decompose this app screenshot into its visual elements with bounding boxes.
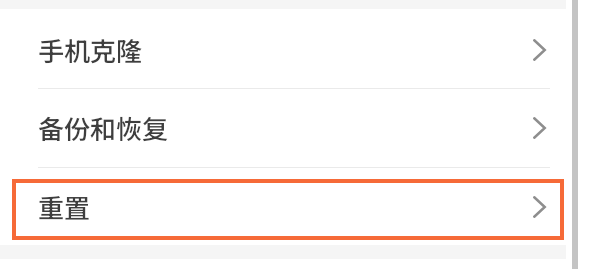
staticText: 手机克隆: [38, 31, 143, 69]
other: 打开备份和恢复: [533, 117, 546, 139]
staticText: 重置: [38, 188, 91, 226]
button[interactable]: 备份和恢复: [0, 89, 566, 167]
button[interactable]: 手机克隆: [0, 11, 566, 89]
button[interactable]: 重置: [0, 171, 566, 243]
other: 打开重置: [533, 196, 546, 218]
other: 打开手机克隆: [533, 39, 546, 61]
staticText: 备份和恢复: [38, 109, 169, 147]
